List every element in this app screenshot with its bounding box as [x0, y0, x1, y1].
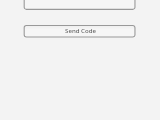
button[interactable]: Send Code	[24, 25, 136, 38]
button[interactable]: Phone number input	[24, 0, 136, 10]
staticText: Send Code	[65, 26, 96, 34]
